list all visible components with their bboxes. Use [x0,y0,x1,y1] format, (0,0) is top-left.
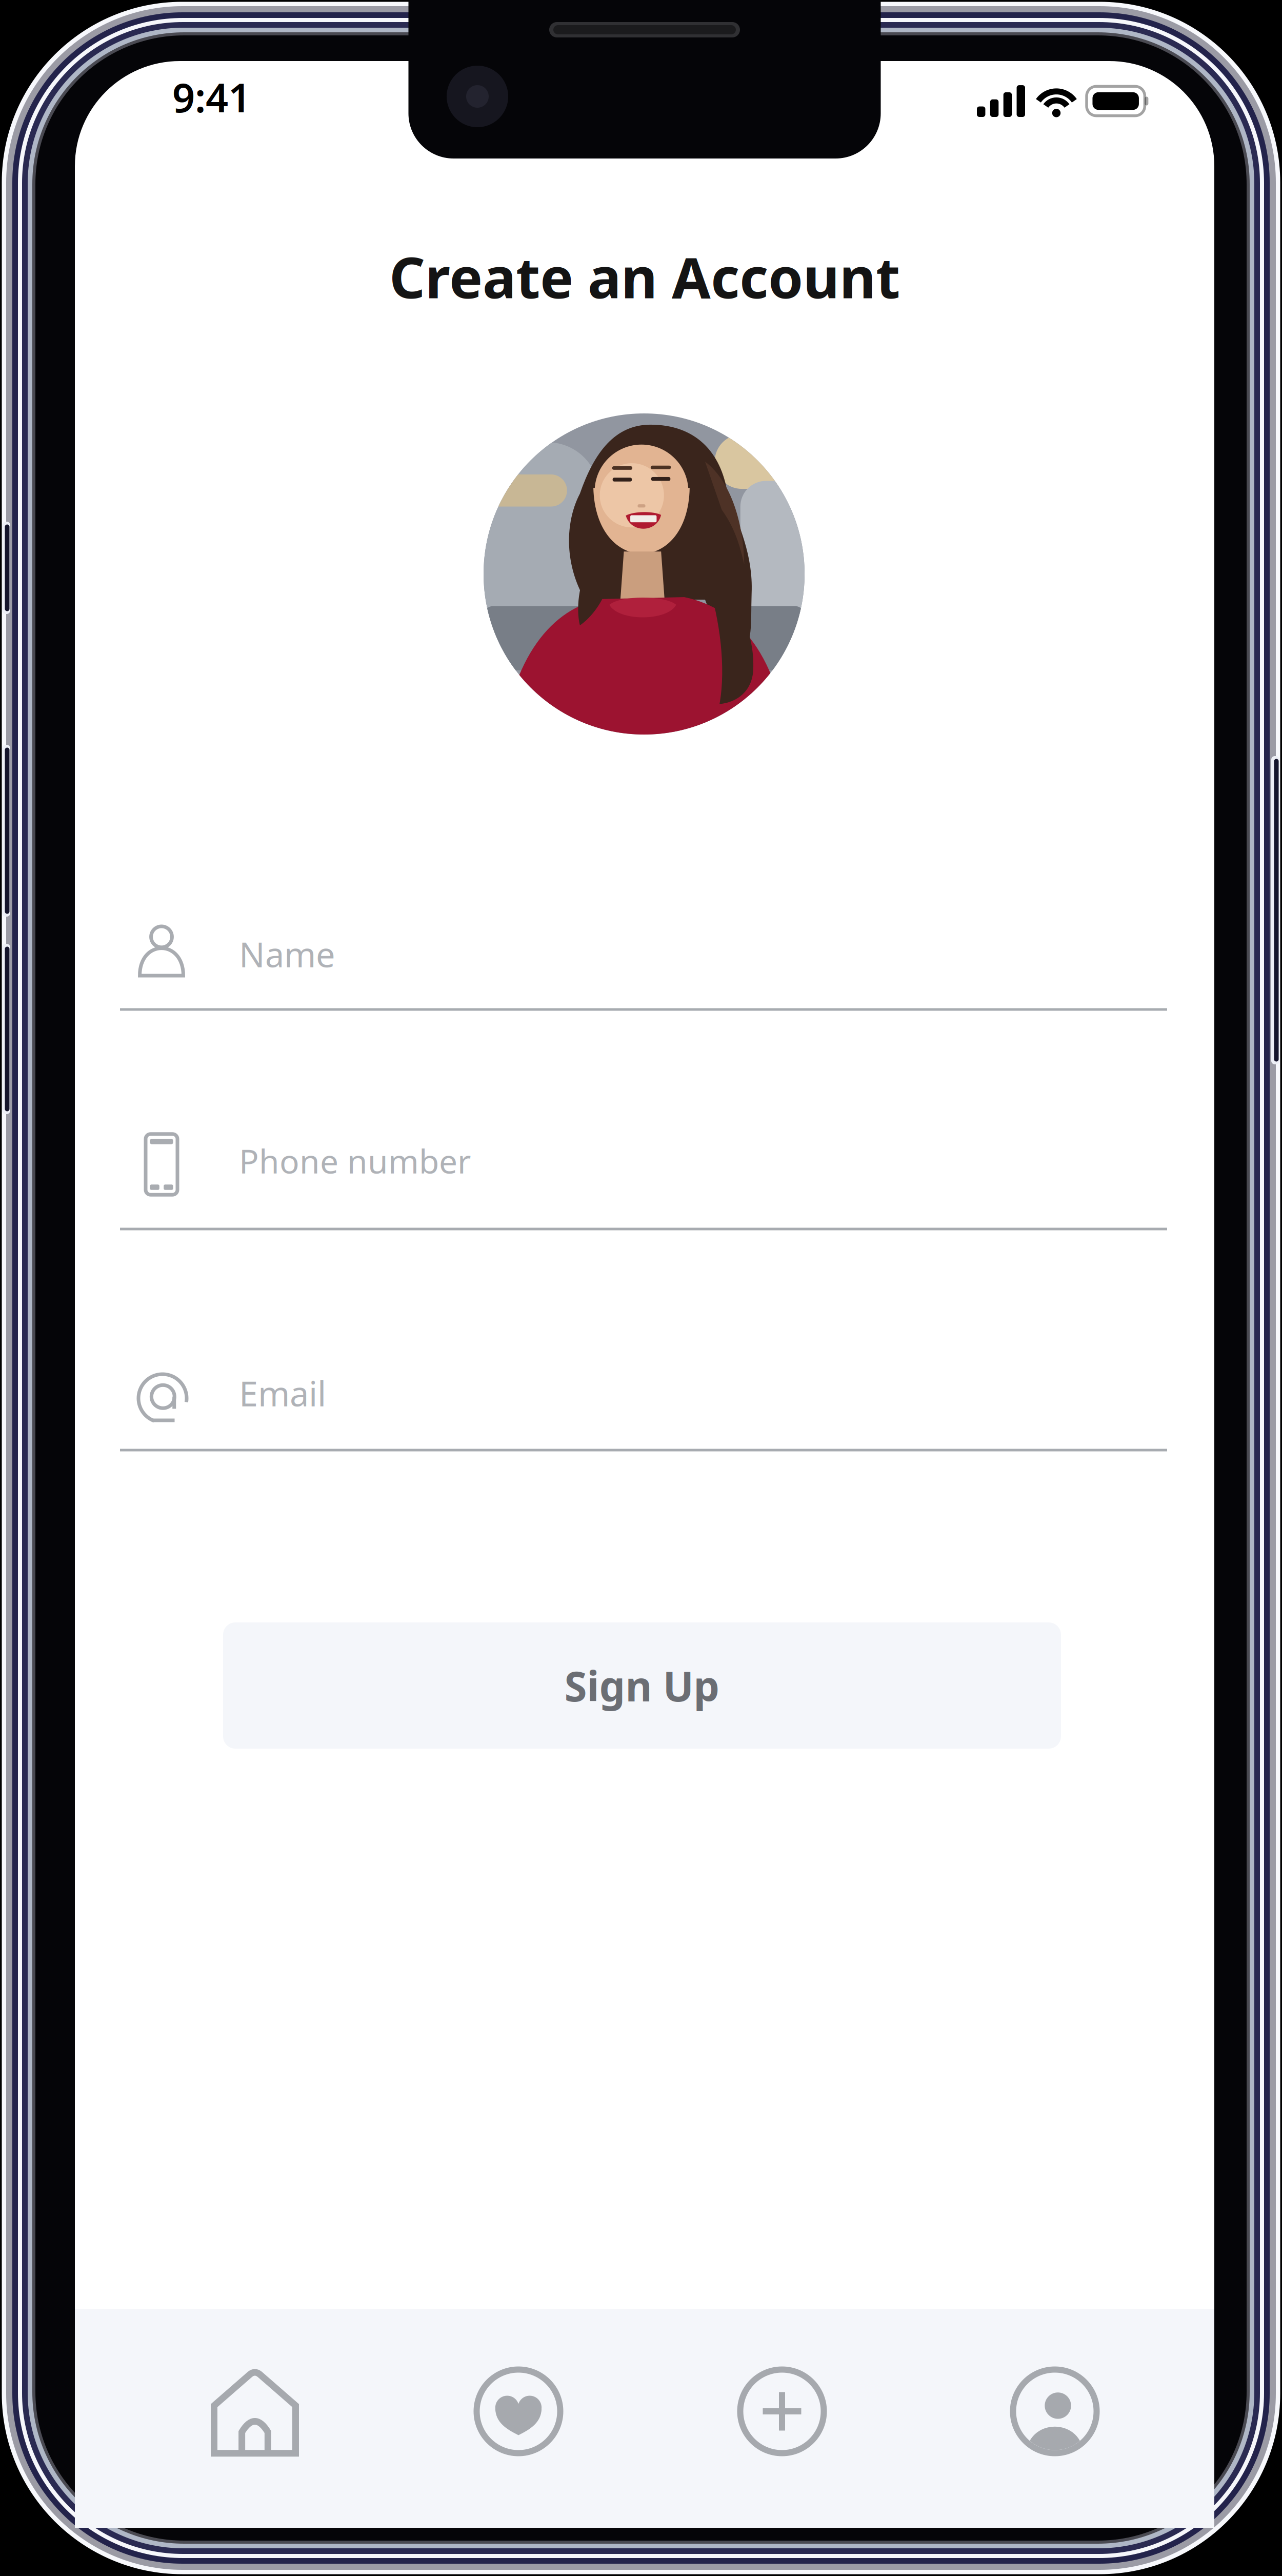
button[interactable]: Phone number [120,1165,1167,1233]
button[interactable]: Email [120,1386,1167,1454]
staticText: Email [239,1370,326,1416]
staticText: Name [239,931,335,977]
staticText: Create an Account [389,239,900,314]
button[interactable]: Home [196,2353,314,2471]
staticText: Phone number [239,1139,471,1183]
staticText: Sign Up [564,1658,720,1713]
button[interactable]: Name [120,946,1167,1014]
button[interactable]: Create [723,2352,841,2470]
button[interactable]: Sign Up [223,1622,1061,1749]
button[interactable]: Profile [996,2352,1114,2470]
staticText: 9:41 [172,71,251,123]
button[interactable]: Favorites [459,2352,577,2470]
